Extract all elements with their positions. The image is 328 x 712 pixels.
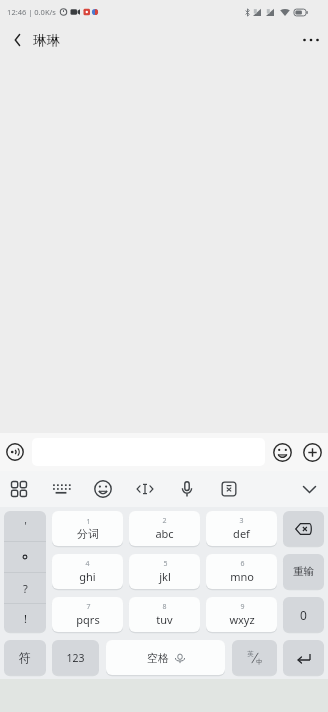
staticText: pqrs <box>76 612 100 627</box>
staticText: 空格 <box>147 651 169 665</box>
staticText: def <box>233 526 250 541</box>
button[interactable]: 2 <box>129 511 200 546</box>
button[interactable] <box>273 443 292 462</box>
staticText: wxyz <box>229 612 255 627</box>
staticText: ! <box>24 611 27 626</box>
staticText: 4 <box>85 559 90 569</box>
staticText: 0 <box>300 607 307 623</box>
staticText: 符 <box>19 650 31 665</box>
button[interactable] <box>10 480 28 498</box>
button[interactable] <box>303 443 322 462</box>
button[interactable]: ? <box>4 573 46 603</box>
button[interactable]: 123 <box>52 640 99 675</box>
button[interactable] <box>283 640 324 675</box>
staticText: 6 <box>240 559 245 569</box>
staticText: ? <box>23 581 28 596</box>
button[interactable]: 3 <box>206 511 277 546</box>
button[interactable] <box>283 511 324 546</box>
button[interactable]: 4 <box>52 554 123 589</box>
staticText: 琳琳 <box>33 32 60 49</box>
staticText: 2 <box>162 516 167 526</box>
button[interactable] <box>296 25 326 55</box>
staticText: 8 <box>162 602 167 612</box>
button[interactable]: 6 <box>206 554 277 589</box>
button[interactable] <box>52 480 70 498</box>
button[interactable] <box>220 480 238 498</box>
button[interactable] <box>6 443 24 461</box>
staticText: 分词 <box>77 527 99 541</box>
staticText: 3 <box>239 516 244 526</box>
staticText: 英 <box>247 650 254 658</box>
button[interactable] <box>94 480 112 498</box>
staticText: tuv <box>156 612 173 627</box>
button[interactable] <box>178 480 196 498</box>
button[interactable]: 符 <box>4 640 46 675</box>
staticText: 5 <box>163 559 168 569</box>
button[interactable]: 8 <box>129 597 200 632</box>
staticText: 7 <box>86 602 91 612</box>
staticText: 重输 <box>293 565 314 578</box>
button[interactable] <box>136 480 154 498</box>
staticText: 9 <box>240 602 245 612</box>
button[interactable]: 9 <box>206 597 277 632</box>
button[interactable] <box>4 26 32 54</box>
staticText: ' <box>24 519 27 533</box>
button[interactable]: 1 <box>52 511 123 546</box>
staticText: 12:46 | 0.0K/s <box>7 7 56 17</box>
button[interactable]: 5 <box>129 554 200 589</box>
button[interactable]: ' <box>4 511 46 541</box>
button[interactable]: ! <box>4 604 46 632</box>
button[interactable]: 7 <box>52 597 123 632</box>
button[interactable]: 重输 <box>283 554 324 589</box>
button[interactable]: 0 <box>283 597 324 632</box>
staticText: ghi <box>79 569 96 584</box>
staticText: abc <box>155 526 174 541</box>
staticText: 中 <box>256 658 263 666</box>
button[interactable] <box>298 478 320 500</box>
staticText: 123 <box>66 651 85 665</box>
staticText: 1 <box>86 517 91 527</box>
staticText: jkl <box>159 569 171 584</box>
staticText: mno <box>230 569 254 584</box>
button[interactable]: 英 <box>232 640 277 675</box>
button[interactable] <box>4 542 46 572</box>
button[interactable]: 空格 <box>106 640 225 675</box>
